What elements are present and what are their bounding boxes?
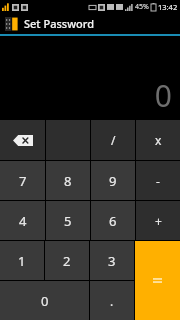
button[interactable]: 2	[45, 241, 89, 280]
button[interactable]	[135, 241, 180, 320]
button[interactable]: /	[91, 120, 135, 160]
button[interactable]: x	[136, 120, 180, 160]
staticText: Set Password	[24, 16, 94, 31]
staticText: .	[110, 293, 114, 309]
staticText: -	[156, 173, 160, 189]
staticText: 2	[63, 252, 71, 270]
button[interactable]: 7	[0, 161, 45, 200]
staticText: 9	[109, 172, 117, 190]
button[interactable]: 8	[46, 161, 90, 200]
staticText: 45%	[135, 2, 149, 12]
button[interactable]: 6	[91, 201, 135, 240]
staticText: 7	[19, 172, 27, 190]
staticText: 4	[19, 212, 27, 230]
button[interactable]: 1	[0, 241, 44, 280]
button[interactable]: .	[90, 281, 134, 320]
button[interactable]: +	[136, 201, 180, 240]
staticText: /	[111, 132, 116, 148]
staticText: 3	[108, 252, 116, 270]
staticText: 0	[154, 75, 172, 116]
button[interactable]: 0	[0, 281, 89, 320]
button[interactable]: 3	[90, 241, 134, 280]
staticText: 8	[64, 172, 72, 190]
staticText: 5	[64, 212, 72, 230]
button[interactable]: Backspace	[0, 120, 45, 160]
staticText: 0	[41, 292, 49, 310]
button[interactable]: 9	[91, 161, 135, 200]
button[interactable]: Set Password	[0, 13, 180, 34]
button[interactable]: 4	[0, 201, 45, 240]
button[interactable]: -	[136, 161, 180, 200]
staticText: x	[155, 132, 162, 148]
staticText: 1	[18, 252, 26, 270]
button[interactable]: 5	[46, 201, 90, 240]
staticText: 6	[109, 212, 117, 230]
staticText: 13:42	[158, 2, 178, 12]
staticText: +	[155, 213, 162, 229]
